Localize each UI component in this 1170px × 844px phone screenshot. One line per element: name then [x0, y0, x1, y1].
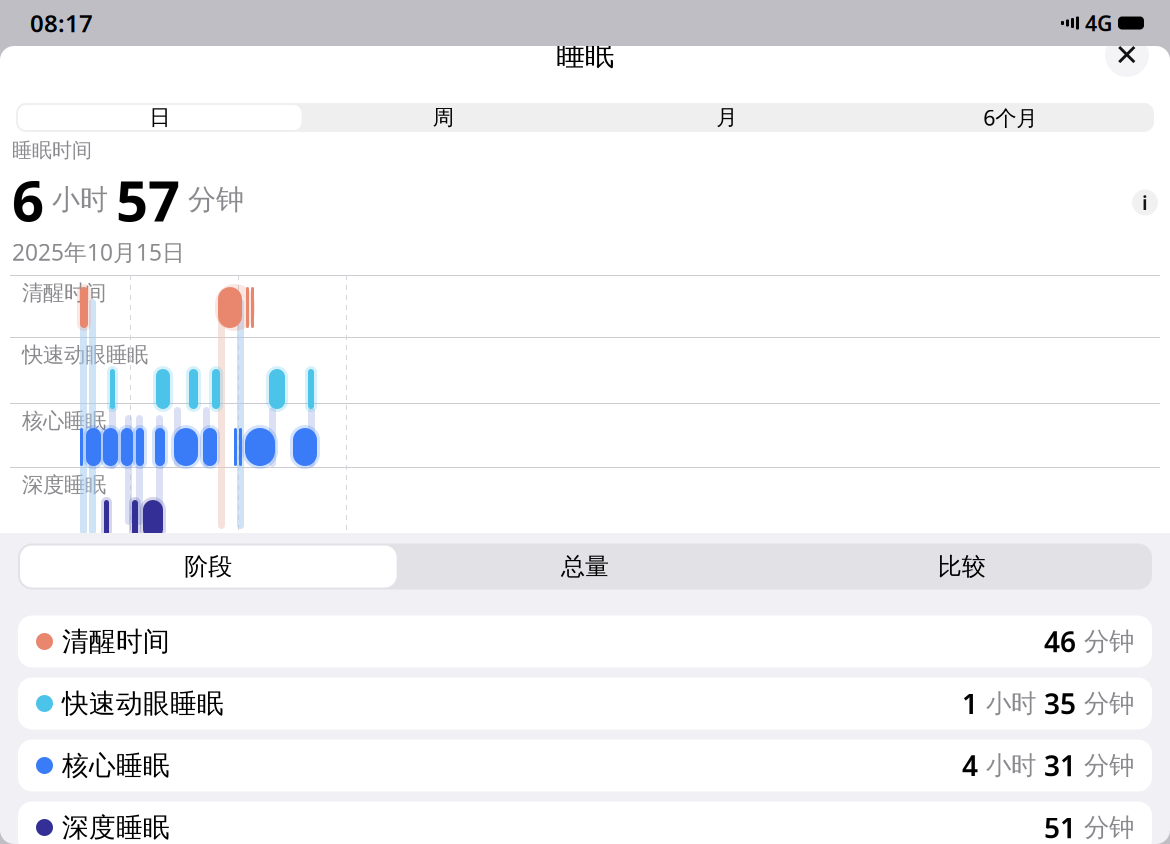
staticText: 日: [149, 104, 170, 131]
staticText: 核心睡眠: [22, 408, 106, 434]
staticText: 分钟: [1076, 750, 1134, 781]
button[interactable]: 核心睡眠: [18, 739, 1152, 791]
staticText: 2025年10月15日: [12, 237, 185, 267]
staticText: 01:00: [130, 542, 188, 572]
button[interactable]: 关闭: [1105, 33, 1149, 77]
staticText: 6个月: [983, 103, 1037, 132]
staticText: 4G: [1085, 9, 1112, 37]
button[interactable]: 总量: [397, 545, 773, 587]
staticText: 阶段: [184, 552, 232, 581]
staticText: 分钟: [180, 182, 244, 217]
staticText: 小时: [978, 688, 1044, 719]
staticText: 6: [12, 162, 44, 237]
staticText: 快速动眼睡眠: [62, 687, 224, 720]
staticText: 深度睡眠: [62, 811, 170, 844]
staticText: 睡眠: [556, 37, 614, 73]
staticText: 清醒时间: [22, 280, 106, 306]
button[interactable]: 日: [18, 105, 301, 130]
staticText: 1: [962, 685, 978, 722]
staticText: 04:00: [238, 542, 296, 572]
staticText: 清醒时间: [62, 625, 170, 658]
staticText: 周: [433, 104, 454, 131]
button[interactable]: 月: [585, 105, 868, 130]
button[interactable]: 信息: [1132, 189, 1158, 216]
staticText: 快速动眼睡眠: [22, 342, 148, 368]
staticText: 小时: [44, 182, 116, 217]
staticText: 分钟: [1076, 688, 1134, 719]
staticText: i: [1142, 189, 1148, 216]
staticText: 小时: [978, 750, 1044, 781]
staticText: 核心睡眠: [62, 749, 170, 782]
button[interactable]: 阶段: [20, 545, 397, 587]
staticText: 07:00: [346, 542, 404, 572]
button[interactable]: 深度睡眠: [18, 801, 1152, 844]
button[interactable]: 清醒时间: [18, 615, 1152, 667]
staticText: 睡眠时间: [12, 138, 92, 163]
staticText: 分钟: [1076, 626, 1134, 657]
staticText: 分钟: [1076, 812, 1134, 843]
staticText: 31: [1044, 747, 1076, 784]
staticText: 46: [1044, 623, 1076, 660]
staticText: 比较: [938, 552, 986, 581]
staticText: 深度睡眠: [22, 472, 106, 498]
staticText: 35: [1044, 685, 1076, 722]
button[interactable]: 快速动眼睡眠: [18, 677, 1152, 729]
button[interactable]: 6个月: [868, 105, 1152, 130]
button[interactable]: 比较: [773, 545, 1150, 587]
staticText: 22:00: [22, 542, 80, 572]
staticText: 51: [1044, 809, 1076, 844]
staticText: 月: [716, 104, 737, 131]
staticText: 总量: [561, 552, 609, 581]
staticText: 57: [116, 162, 180, 237]
staticText: ✕: [1114, 38, 1139, 72]
staticText: 08:17: [30, 7, 93, 39]
button[interactable]: 周: [301, 105, 585, 130]
staticText: 4: [962, 747, 978, 784]
